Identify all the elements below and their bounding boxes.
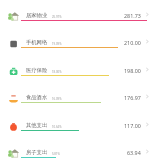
other: More (144, 93, 151, 100)
staticText: 医疗保险 (26, 67, 48, 74)
staticText: 16.09% (52, 97, 62, 101)
staticText: 居家物业 (26, 12, 48, 19)
staticText: 63.94 (127, 149, 141, 156)
staticText: 176.97 (124, 94, 141, 101)
staticText: 手机网络 (26, 39, 48, 46)
staticText: 房子支出 (26, 149, 48, 156)
staticText: 其他支出 (26, 122, 48, 129)
staticText: 19.09% (52, 42, 62, 46)
staticText: 117.00 (124, 122, 141, 129)
staticText: 18.00% (52, 70, 62, 74)
button[interactable]: 手机网络 (0, 27, 160, 54)
button[interactable]: 医疗保险 (0, 55, 160, 82)
staticText: 198.00 (124, 67, 141, 74)
staticText: 10.64% (52, 125, 62, 129)
other: More (144, 66, 151, 73)
button[interactable]: 房子支出 (0, 137, 160, 160)
staticText: 25.97% (52, 15, 62, 19)
staticText: 281.73 (124, 12, 141, 19)
button[interactable]: 居家物业 (0, 0, 160, 27)
other: More (144, 11, 151, 18)
staticText: 食品酒水 (26, 94, 48, 101)
button[interactable]: 其他支出 (0, 110, 160, 137)
other: More (144, 38, 151, 45)
staticText: 210.00 (124, 39, 141, 46)
button[interactable]: 食品酒水 (0, 82, 160, 109)
staticText: 5.81% (52, 152, 60, 156)
other: More (144, 121, 151, 128)
other: More (144, 148, 151, 155)
